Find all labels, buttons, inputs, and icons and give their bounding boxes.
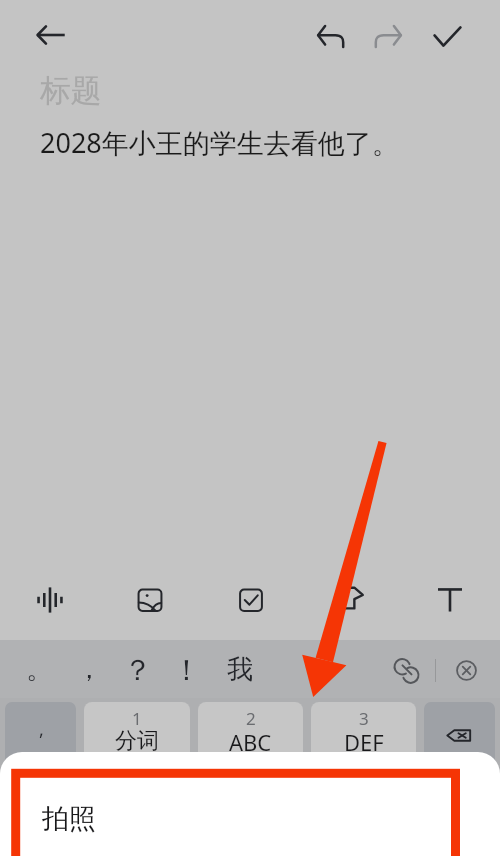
staticText: 我	[227, 653, 253, 686]
button[interactable]: 1	[84, 702, 190, 774]
staticText: 2	[246, 707, 256, 730]
staticText: ABC	[229, 727, 272, 757]
button[interactable]: Image	[125, 575, 175, 625]
staticText: 1	[132, 707, 142, 730]
staticText: 标题	[40, 71, 102, 110]
button[interactable]: Text format	[425, 575, 475, 625]
staticText: 3	[359, 707, 369, 730]
button[interactable]: ！	[162, 645, 210, 693]
button[interactable]: Close keyboard	[442, 646, 490, 694]
staticText: 。	[26, 653, 52, 686]
button[interactable]: ,	[5, 702, 76, 774]
button[interactable]: Done	[423, 12, 471, 60]
button[interactable]: 2	[198, 702, 303, 774]
staticText: ？	[123, 652, 152, 689]
button[interactable]: Checklist	[226, 575, 276, 625]
button[interactable]: Voice	[25, 575, 75, 625]
button[interactable]: Back	[27, 11, 75, 59]
button[interactable]	[424, 702, 495, 774]
button[interactable]: ，	[65, 645, 113, 693]
staticText: 分词	[115, 727, 159, 755]
button[interactable]: 我	[216, 645, 264, 693]
staticText: ，	[76, 653, 102, 686]
button[interactable]: Clipboard	[383, 646, 430, 693]
staticText: ！	[172, 652, 201, 689]
button[interactable]: 3	[311, 702, 416, 774]
button[interactable]: Undo	[306, 12, 354, 60]
staticText: 拍照	[42, 802, 96, 836]
staticText: 2028年小王的学生去看他了。	[40, 124, 399, 161]
button[interactable]: Doodle	[326, 575, 376, 625]
staticText: DEF	[344, 727, 384, 757]
button[interactable]: 。	[15, 645, 63, 693]
button[interactable]: ？	[113, 645, 161, 693]
staticText: ,	[39, 717, 44, 742]
button[interactable]: Redo	[364, 12, 412, 60]
